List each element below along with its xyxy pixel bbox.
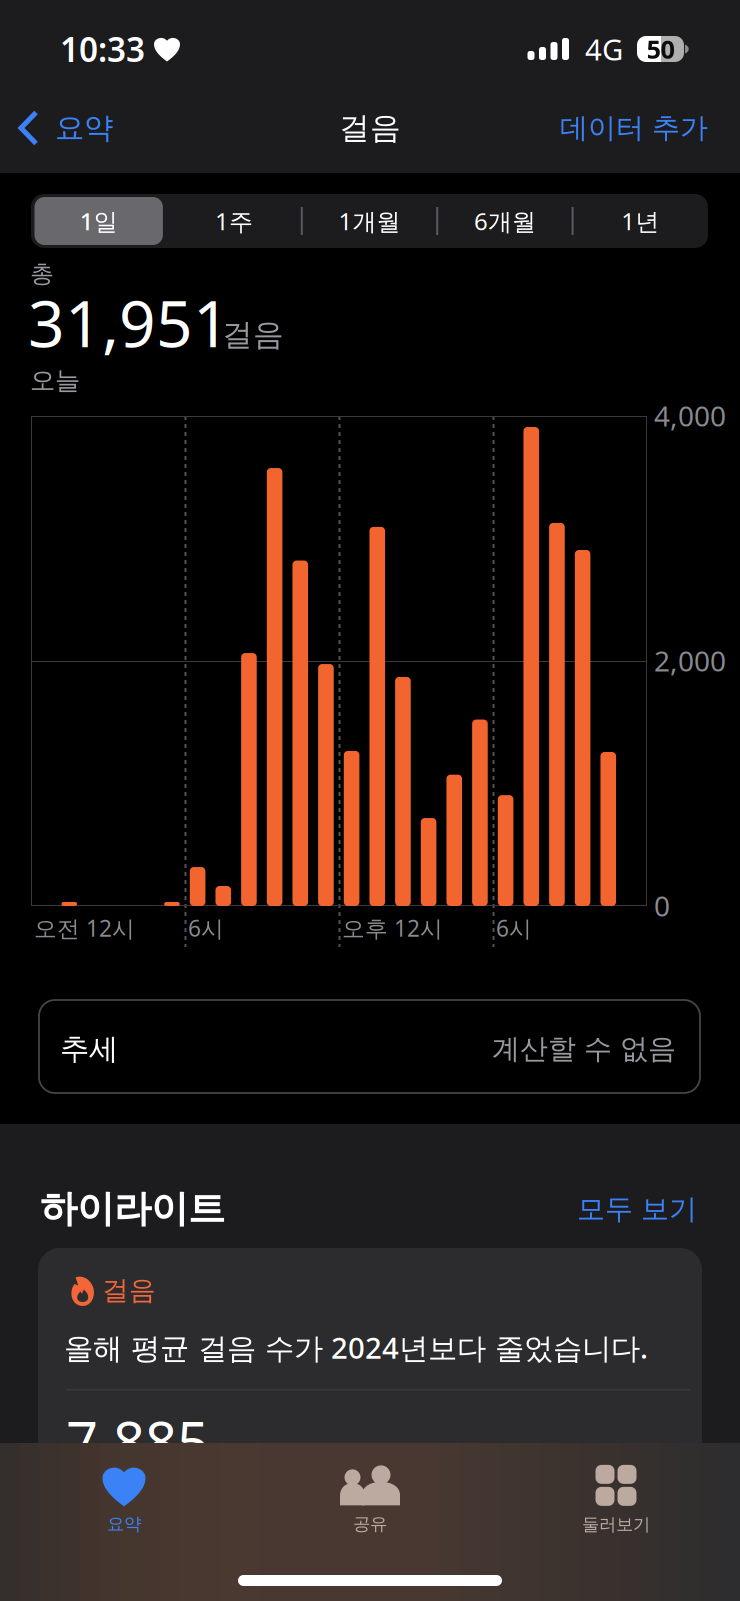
staticText: 계산할 수 없음 [492, 1032, 676, 1066]
staticText: 0 [654, 887, 670, 924]
staticText: 6시 [496, 913, 532, 943]
button[interactable]: 둘러보기 [493, 1455, 739, 1545]
staticText: 1개월 [338, 205, 400, 237]
staticText: 6개월 [474, 205, 536, 237]
button[interactable]: 공유 [247, 1455, 493, 1545]
staticText: 요약 [55, 110, 113, 146]
staticText: 4G [585, 29, 623, 68]
staticText: 데이터 추가 [560, 111, 708, 145]
button[interactable]: 1년 [573, 194, 708, 248]
staticText: 요약 [107, 1513, 141, 1535]
staticText: 10:33 [60, 27, 145, 71]
staticText: 4,000 [654, 397, 726, 434]
button[interactable]: 추세 [39, 1000, 700, 1093]
staticText: 1주 [215, 205, 253, 237]
staticText: 오후 12시 [342, 913, 443, 943]
staticText: 걸음 [222, 316, 284, 354]
button[interactable]: 걸음 [38, 1248, 702, 1548]
staticText: 오늘 [30, 365, 80, 396]
staticText: 총 [30, 259, 54, 288]
staticText: 공유 [353, 1513, 387, 1535]
staticText: 모두 보기 [577, 1192, 697, 1226]
button[interactable]: 모두 보기 [577, 1192, 697, 1226]
button[interactable]: 데이터 추가 [544, 96, 724, 160]
button[interactable]: 1일 [31, 194, 166, 248]
staticText: 하이라이트 [40, 1186, 225, 1232]
staticText: 7,885 [66, 1404, 209, 1478]
staticText: 50 [646, 32, 674, 66]
staticText: 2,000 [654, 642, 726, 679]
button[interactable]: 1주 [166, 194, 302, 248]
button[interactable]: 요약 [1, 1455, 247, 1545]
staticText: 걸음 [339, 109, 401, 147]
staticText: 둘러보기 [582, 1514, 650, 1535]
staticText: 1년 [621, 205, 659, 237]
staticText: 6시 [188, 913, 224, 943]
staticText: 걸음/일 [216, 1435, 307, 1471]
button[interactable]: 1개월 [302, 194, 437, 248]
staticText: 31,951 [28, 280, 230, 365]
staticText: 오전 12시 [34, 913, 135, 943]
button[interactable]: 요약 [0, 96, 129, 160]
button[interactable]: 6개월 [437, 194, 573, 248]
staticText: 추세 [60, 1031, 118, 1067]
staticText: 1일 [80, 205, 118, 237]
staticText: 걸음 [102, 1274, 156, 1307]
staticText: 올해 평균 걸음 수가 2024년보다 줄었습니다. [64, 1328, 648, 1367]
